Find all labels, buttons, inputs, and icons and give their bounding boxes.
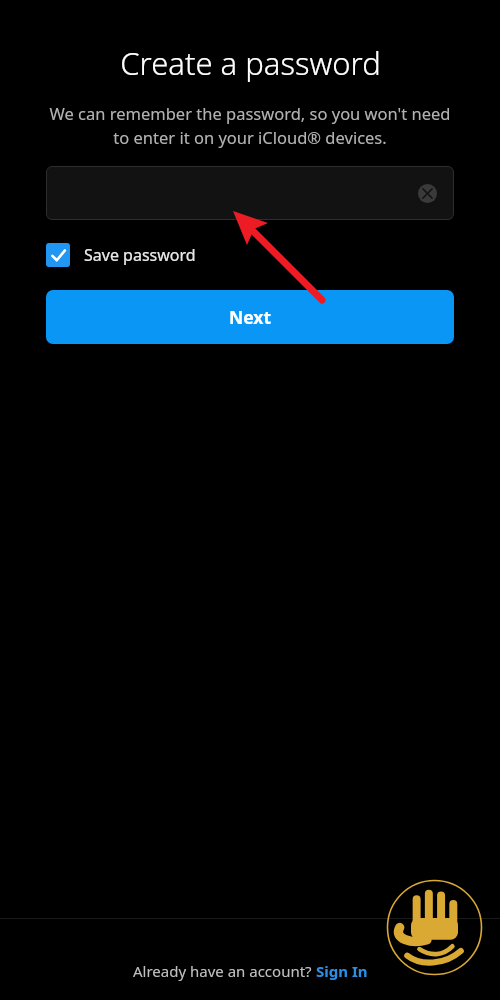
staticText: Save password [84,244,196,266]
staticText: Already have an account? [133,961,316,981]
staticText: Create a password [120,42,381,84]
button[interactable]: Sign In [316,961,368,981]
staticText: We can remember the password, so you won… [44,102,456,149]
button[interactable]: Next [46,290,454,344]
button[interactable]: Save password [46,243,454,267]
button[interactable]: Clear text [412,178,442,208]
staticText: Next [229,305,272,329]
button[interactable]: Clear text [46,166,454,220]
staticText: Sign In [316,961,368,981]
